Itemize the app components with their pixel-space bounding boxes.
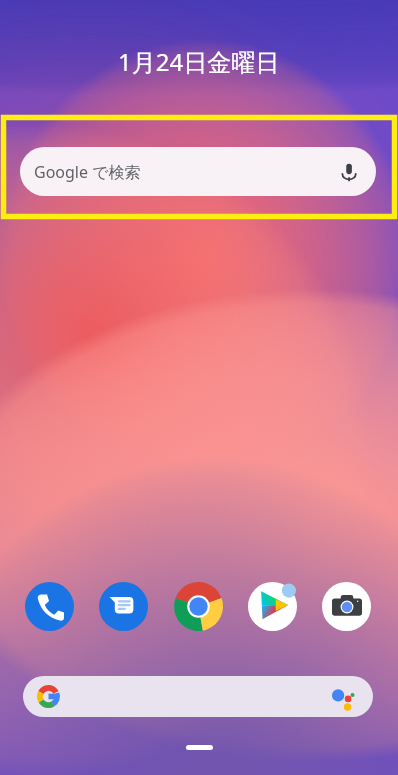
staticText: Google で検索	[34, 161, 141, 183]
button[interactable]: Camera	[322, 582, 371, 631]
button[interactable]: Google で検索	[20, 147, 376, 196]
other: Google Assistant	[329, 684, 355, 710]
button[interactable]: Chrome	[174, 582, 223, 631]
other: Voice search	[337, 160, 361, 184]
staticText: 1月24日金曜日	[118, 45, 280, 78]
button[interactable]: Phone	[25, 582, 74, 631]
button[interactable]: Google Assistant	[23, 676, 373, 717]
button[interactable]: Messages	[99, 582, 148, 631]
button[interactable]: Play Store	[248, 582, 297, 631]
